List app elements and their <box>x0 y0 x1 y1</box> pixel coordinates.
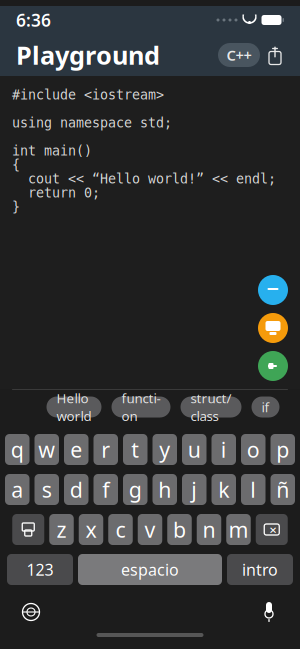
staticText: s <box>42 475 52 504</box>
button[interactable]: ñ <box>270 474 295 505</box>
staticText: Hello world <box>56 389 91 425</box>
staticText: h <box>158 475 171 504</box>
button[interactable]: 123 <box>7 554 73 585</box>
staticText: int main() <box>12 143 92 158</box>
staticText: return 0; <box>12 185 100 200</box>
button[interactable]: x <box>79 514 103 545</box>
button[interactable]: h <box>152 474 177 505</box>
button[interactable]: b <box>167 514 192 545</box>
staticText: struct/class <box>190 389 231 425</box>
staticText: using namespace std; <box>12 115 172 130</box>
button[interactable]: if <box>251 396 279 417</box>
button[interactable]: s <box>34 474 59 505</box>
staticText: n <box>202 515 215 544</box>
button[interactable]: c <box>108 514 133 545</box>
button[interactable]: o <box>241 434 265 465</box>
staticText: { <box>12 157 20 172</box>
staticText: #include <iostream> <box>12 87 164 102</box>
button[interactable]: r <box>93 434 118 465</box>
button[interactable]: f <box>93 474 118 505</box>
button[interactable]: Shift <box>12 514 44 545</box>
staticText: t <box>131 435 139 464</box>
button[interactable]: j <box>182 474 206 505</box>
button[interactable]: m <box>226 514 251 545</box>
staticText: p <box>276 435 289 464</box>
staticText: × <box>269 521 277 538</box>
staticText: w <box>38 435 55 464</box>
staticText: if <box>261 398 269 416</box>
button[interactable]: Share <box>260 40 290 70</box>
button[interactable]: Collapse <box>258 275 288 305</box>
staticText: } <box>12 199 20 214</box>
button[interactable]: Change Keyboard <box>14 595 48 629</box>
staticText: espacio <box>121 559 179 580</box>
staticText: z <box>56 515 66 544</box>
staticText: cout << “Hello world!” << endl; <box>12 171 276 186</box>
staticText: f <box>102 475 109 504</box>
button[interactable]: Dictate <box>252 595 286 629</box>
staticText: 6:36 <box>16 8 51 31</box>
staticText: C++ <box>226 45 251 65</box>
button[interactable]: Run <box>258 351 288 381</box>
button[interactable]: C++ <box>218 43 260 67</box>
staticText: k <box>218 475 229 504</box>
button[interactable]: y <box>152 434 177 465</box>
staticText: l <box>250 475 256 504</box>
button[interactable]: v <box>138 514 162 545</box>
button[interactable]: Hello world <box>46 396 101 417</box>
staticText: intro <box>242 559 278 580</box>
button[interactable]: Hide Keyboard <box>258 313 288 343</box>
staticText: Playground <box>16 38 160 72</box>
staticText: function <box>121 389 160 425</box>
staticText: g <box>129 475 142 504</box>
button[interactable]: intro <box>227 554 293 585</box>
button[interactable]: q <box>5 434 29 465</box>
button[interactable]: k <box>211 474 236 505</box>
staticText: u <box>188 435 201 464</box>
button[interactable]: l <box>241 474 265 505</box>
button[interactable]: function <box>111 396 170 417</box>
staticText: m <box>228 515 248 544</box>
button[interactable]: e <box>64 434 88 465</box>
button[interactable]: espacio <box>78 554 222 585</box>
button[interactable]: z <box>49 514 74 545</box>
staticText: b <box>173 515 186 544</box>
staticText: j <box>191 475 197 504</box>
staticText: r <box>101 435 110 464</box>
staticText: y <box>159 435 170 464</box>
staticText: x <box>85 515 96 544</box>
staticText: ñ <box>276 475 289 504</box>
staticText: v <box>144 515 155 544</box>
button[interactable]: d <box>64 474 88 505</box>
button[interactable]: i <box>211 434 236 465</box>
staticText: e <box>70 435 82 464</box>
button[interactable]: w <box>34 434 59 465</box>
button[interactable]: Delete <box>256 514 288 545</box>
staticText: q <box>11 435 24 464</box>
staticText: d <box>70 475 83 504</box>
staticText: c <box>115 515 125 544</box>
button[interactable]: n <box>197 514 221 545</box>
button[interactable]: p <box>270 434 295 465</box>
staticText: o <box>247 435 260 464</box>
button[interactable]: a <box>5 474 29 505</box>
staticText: i <box>221 435 227 464</box>
staticText: 123 <box>26 559 53 580</box>
staticText: a <box>11 475 23 504</box>
button[interactable]: g <box>123 474 147 505</box>
button[interactable]: struct/class <box>180 396 241 417</box>
button[interactable]: u <box>182 434 206 465</box>
button[interactable]: t <box>123 434 147 465</box>
